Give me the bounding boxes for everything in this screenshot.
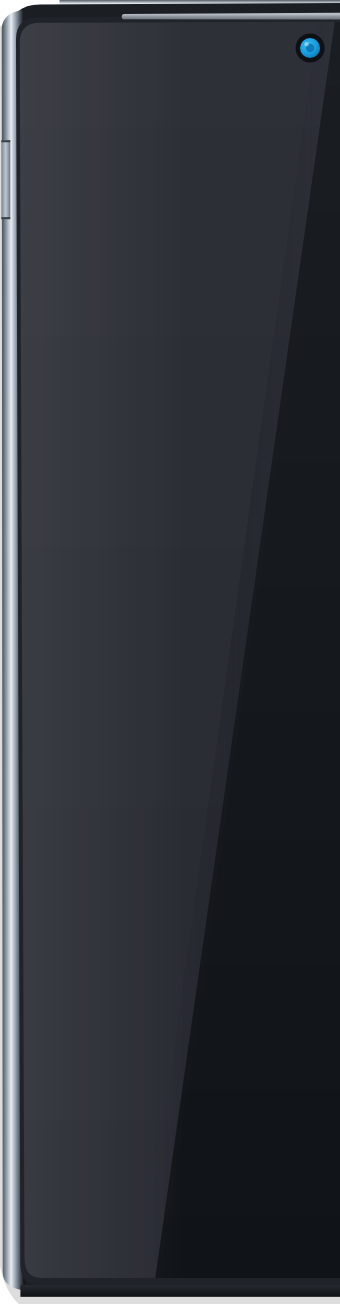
other: Smartphone device render [0, 0, 340, 1304]
